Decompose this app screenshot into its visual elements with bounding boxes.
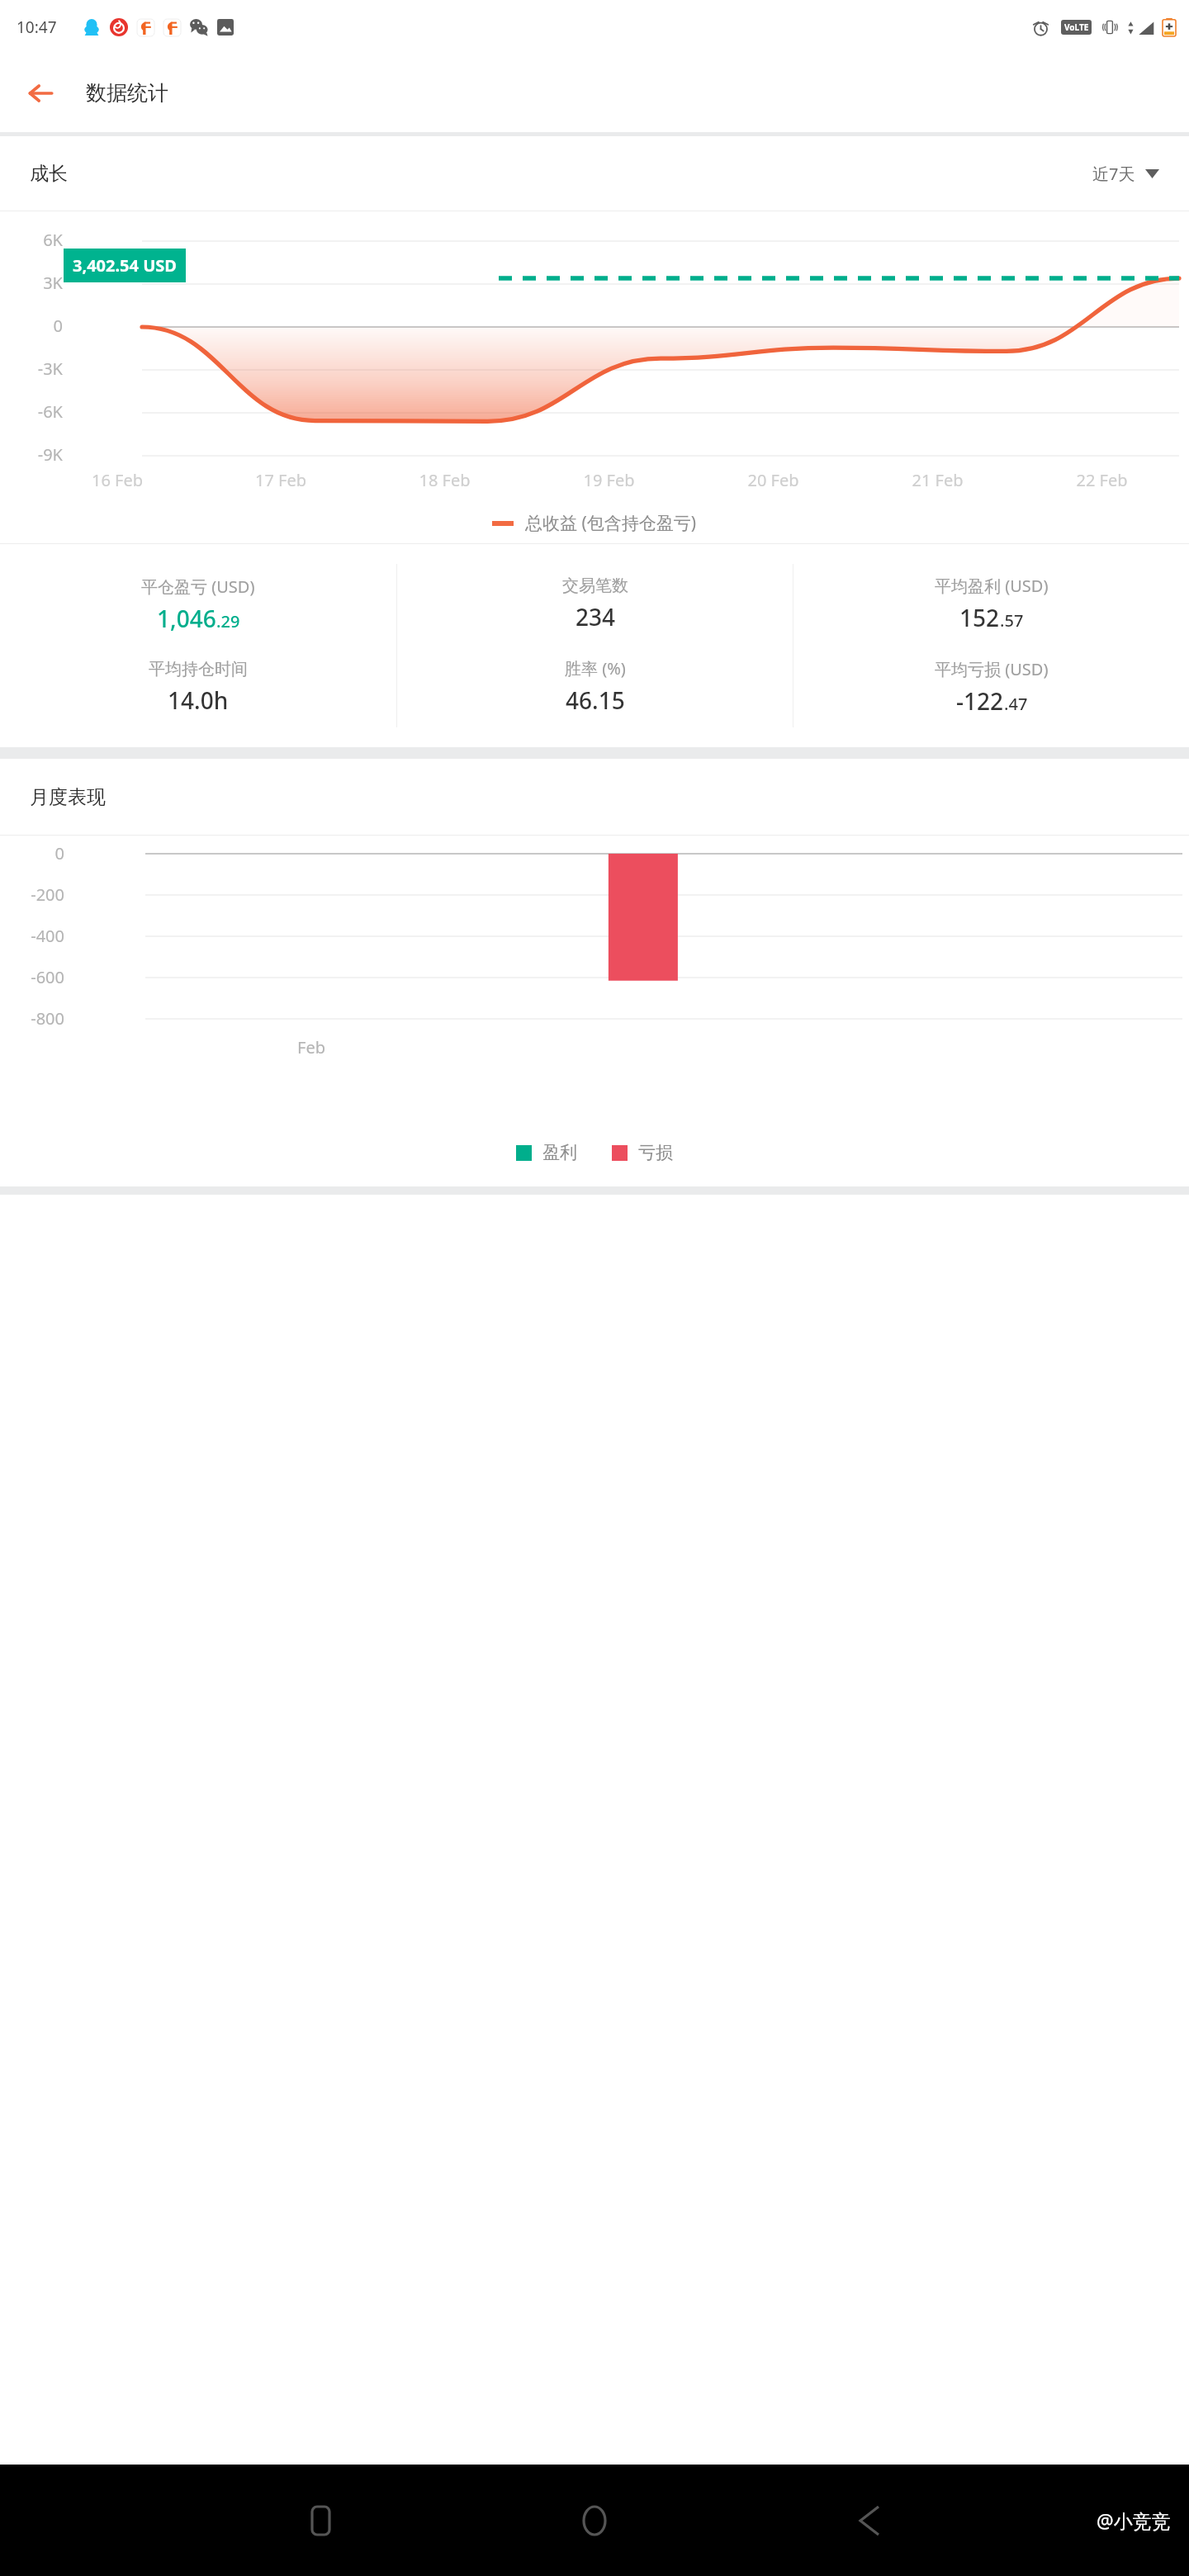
staticText: 交易笔数 [562,575,628,596]
staticText: 10:47 [17,17,57,38]
staticText: 平均持仓时间 [149,659,248,680]
button[interactable]: Recents [291,2492,349,2550]
staticText: 22 Feb [1020,469,1184,491]
staticText: 17 Feb [199,469,362,491]
staticText: 亏损 [638,1142,673,1163]
button[interactable]: Back [841,2492,898,2550]
staticText: Feb [297,1036,325,1058]
staticText: 成长 [30,162,68,186]
button[interactable]: 亏损 [612,1142,673,1163]
staticText: 20 Feb [691,469,855,491]
staticText: 152 [959,602,1000,633]
staticText: @小竞竞 [1097,2507,1171,2533]
staticText: VoLTE [1064,21,1089,33]
staticText: 0 [0,842,64,864]
staticText: -400 [0,925,64,947]
staticText: 46.15 [566,684,625,716]
staticText: -6K [0,400,63,423]
staticText: -200 [0,883,64,906]
staticText: 1,046 [157,603,216,634]
staticText: 3K [0,272,63,294]
staticText: -9K [0,443,63,466]
staticText: 0 [0,315,63,337]
staticText: 盈利 [542,1142,577,1163]
staticText: 21 Feb [855,469,1020,491]
staticText: .29 [216,610,240,632]
staticText: .47 [1004,693,1028,715]
button[interactable]: 近7天 [1087,158,1164,190]
staticText: 16 Feb [36,469,199,491]
staticText: 234 [576,601,616,632]
button[interactable]: Home [566,2492,623,2550]
staticText: 6K [0,229,63,251]
staticText: -3K [0,358,63,380]
button[interactable]: Back [21,74,59,112]
staticText: 数据统计 [86,80,168,106]
staticText: 平均盈利 (USD) [935,575,1049,597]
staticText: 平仓盈亏 (USD) [141,575,255,598]
staticText: 胜率 (%) [565,657,626,680]
staticText: 14.0h [168,684,229,716]
staticText: 3,402.54 USD [73,254,177,277]
staticText: -800 [0,1007,64,1030]
staticText: 19 Feb [527,469,691,491]
staticText: 18 Feb [362,469,527,491]
staticText: -122 [956,685,1004,717]
staticText: 近7天 [1092,163,1135,185]
staticText: 平均亏损 (USD) [935,658,1049,680]
button[interactable]: 盈利 [516,1142,577,1163]
staticText: .57 [1000,609,1024,632]
button[interactable]: 总收益 (包含持仓盈亏) [492,511,697,535]
staticText: -600 [0,966,64,988]
staticText: 总收益 (包含持仓盈亏) [525,511,697,535]
staticText: 月度表现 [30,785,106,809]
